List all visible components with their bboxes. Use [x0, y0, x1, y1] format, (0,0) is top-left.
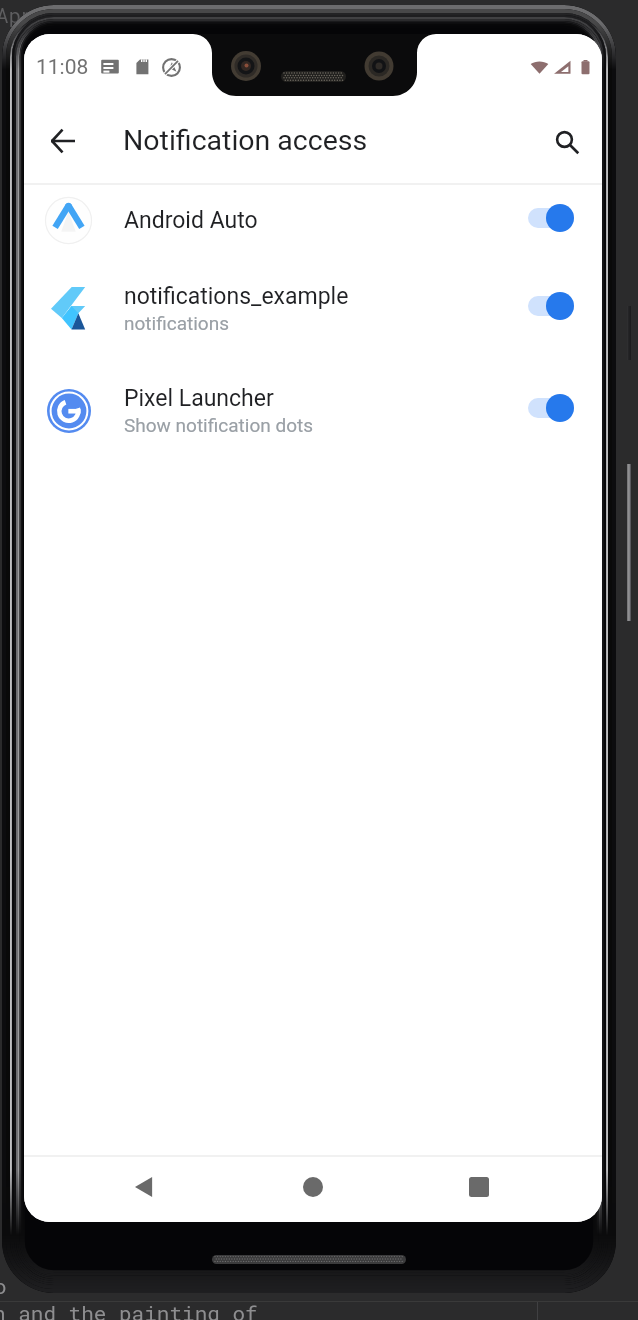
button[interactable]: Home — [281, 1155, 345, 1219]
button[interactable]: Pixel Launcher — [24, 366, 602, 454]
staticText: Android Auto — [124, 207, 258, 234]
staticText: n and the painting of — [0, 1299, 258, 1320]
button[interactable]: notifications_example — [24, 264, 602, 352]
button[interactable]: Recents — [447, 1155, 511, 1219]
staticText: Pixel Launcher — [124, 385, 274, 412]
button[interactable]: Search — [543, 118, 591, 166]
staticText: App — [0, 1, 34, 29]
staticText: notifications — [124, 312, 229, 334]
staticText: 11:08 — [36, 55, 89, 80]
staticText: Notification access — [123, 124, 368, 157]
button[interactable]: Toggle — [524, 384, 596, 432]
button[interactable]: Back — [39, 117, 87, 165]
button[interactable]: Toggle — [524, 194, 596, 242]
staticText: o — [0, 1272, 7, 1300]
button[interactable]: Back — [112, 1155, 176, 1219]
button[interactable]: Toggle — [524, 282, 596, 330]
button[interactable]: Android Auto — [24, 176, 602, 264]
staticText: notifications_example — [124, 283, 349, 310]
staticText: Show notification dots — [124, 414, 313, 436]
